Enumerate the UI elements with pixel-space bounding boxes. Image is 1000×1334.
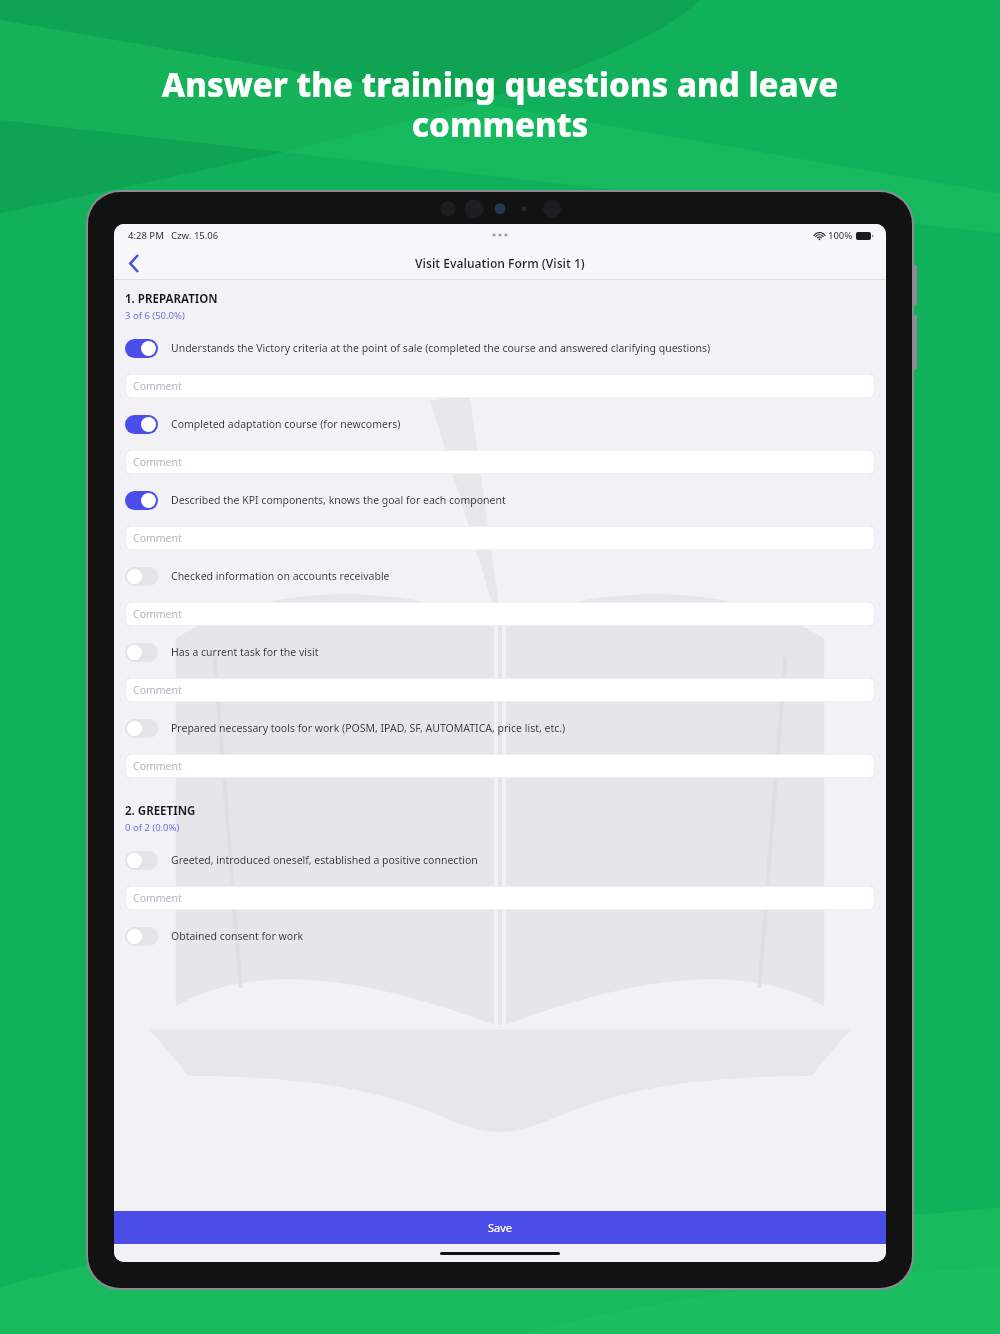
staticText: Prepared necessary tools for work (POSM,… [171,721,566,735]
staticText: 100% [828,229,853,242]
button[interactable]: Toggle on [125,415,158,434]
staticText: Comment [133,607,182,621]
staticText: Completed adaptation course (for newcome… [171,417,401,431]
button[interactable]: Comment [125,450,875,474]
staticText: 2. GREETING [125,803,196,819]
button[interactable]: Toggle on [114,398,886,450]
button[interactable]: Back [120,249,148,277]
button[interactable]: Toggle on [114,322,886,374]
staticText: Greeted, introduced oneself, established… [171,853,478,867]
staticText: Visit Evaluation Form (Visit 1) [415,255,585,271]
staticText: 0 of 2 (0.0%) [125,821,180,834]
staticText: Comment [133,531,182,545]
staticText: Comment [133,759,182,773]
staticText: Described the KPI components, knows the … [171,493,506,507]
button[interactable]: Toggle on [125,339,158,358]
staticText: Comment [133,683,182,697]
button[interactable]: Comment [125,374,875,398]
button[interactable]: Toggle off [114,834,886,886]
button[interactable]: Comment [125,526,875,550]
button[interactable]: Save [114,1211,886,1244]
button[interactable]: Comment [125,602,875,626]
button[interactable]: Comment [125,754,875,778]
button[interactable]: Toggle off [125,719,158,738]
button[interactable]: Toggle off [125,567,158,586]
button[interactable]: Comment [125,678,875,702]
staticText: Czw. 15.06 [171,229,219,242]
button[interactable]: Comment [125,886,875,910]
button[interactable]: Toggle off [114,910,886,962]
button[interactable]: Toggle off [114,550,886,602]
staticText: Obtained consent for work [171,929,304,943]
staticText: Comment [133,891,182,905]
staticText: Checked information on accounts receivab… [171,569,390,583]
staticText: Understands the Victory criteria at the … [171,341,711,355]
staticText: 4:28 PM [128,229,164,242]
button[interactable]: Toggle off [125,927,158,946]
button[interactable]: Toggle on [114,474,886,526]
staticText: Answer the training questions and leave … [70,62,930,146]
button[interactable]: Toggle off [114,626,886,678]
button[interactable]: Toggle off [125,643,158,662]
staticText: Save [488,1220,513,1235]
staticText: Comment [133,455,182,469]
button[interactable]: Toggle on [125,491,158,510]
button[interactable]: Toggle off [114,702,886,754]
staticText: 1. PREPARATION [125,291,218,307]
staticText: Comment [133,379,182,393]
button[interactable]: Toggle off [125,851,158,870]
staticText: 3 of 6 (50.0%) [125,309,185,322]
staticText: Has a current task for the visit [171,645,319,659]
